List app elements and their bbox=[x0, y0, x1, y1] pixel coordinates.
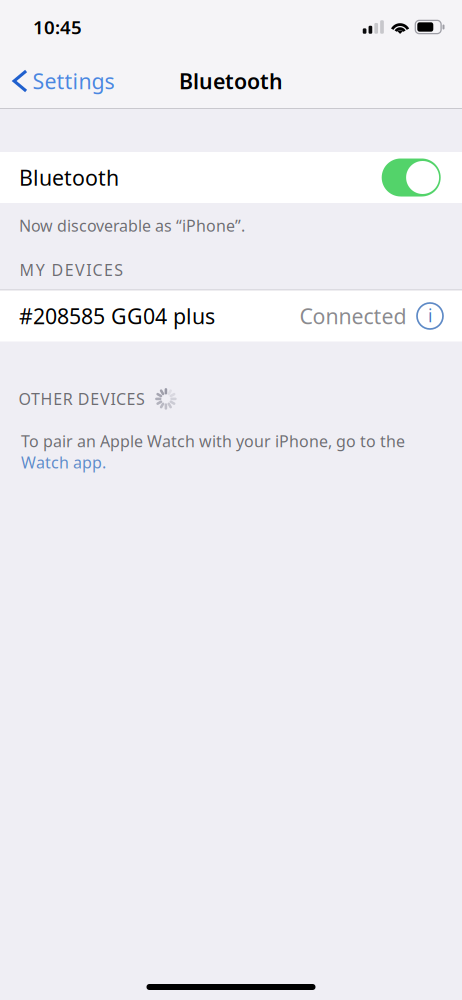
staticText: 10:45 bbox=[33, 15, 82, 39]
button[interactable]: Watch app. bbox=[21, 451, 106, 473]
button[interactable]: Settings bbox=[0, 60, 122, 102]
staticText: Now discoverable as “iPhone”. bbox=[19, 215, 245, 236]
staticText: To pair an Apple Watch with your iPhone,… bbox=[21, 430, 405, 451]
staticText: Settings bbox=[32, 67, 114, 95]
staticText: Connected bbox=[299, 302, 406, 330]
staticText: Bluetooth bbox=[19, 163, 119, 192]
button[interactable]: #208585 GG04 plus bbox=[0, 290, 462, 341]
staticText: #208585 GG04 plus bbox=[19, 302, 215, 330]
staticText: Bluetooth bbox=[179, 67, 283, 95]
staticText: i bbox=[428, 304, 432, 327]
staticText: Watch app. bbox=[21, 451, 106, 473]
staticText: OTHER DEVICES bbox=[18, 388, 145, 409]
staticText: MY DEVICES bbox=[19, 259, 123, 280]
button[interactable]: Bluetooth bbox=[0, 152, 462, 203]
